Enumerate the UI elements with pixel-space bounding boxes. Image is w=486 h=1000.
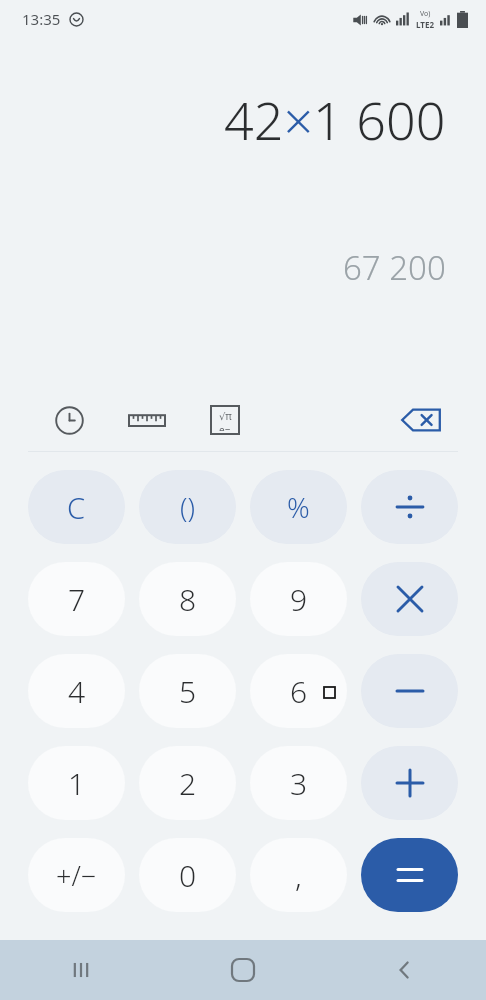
button[interactable]: % — [250, 470, 347, 544]
button[interactable]: Back — [324, 940, 486, 1000]
staticText: LTE2 — [416, 19, 434, 30]
staticText: 7 — [68, 579, 86, 620]
staticText: 9 — [290, 579, 308, 620]
button[interactable]: ÷ — [361, 470, 458, 544]
button[interactable]: 6 — [250, 654, 347, 728]
button[interactable]: 2 — [139, 746, 236, 820]
button[interactable]: + — [361, 746, 458, 820]
button[interactable]: Backspace — [386, 392, 456, 448]
staticText: 13:35 — [22, 9, 61, 29]
staticText: 2 — [179, 763, 197, 804]
button[interactable]: 0 — [139, 838, 236, 912]
button[interactable]: 5 — [139, 654, 236, 728]
button[interactable]: 4 — [28, 654, 125, 728]
staticText: C — [67, 488, 86, 527]
staticText: 3 — [290, 763, 308, 804]
staticText: 8 — [179, 579, 197, 620]
button[interactable]: Home — [162, 940, 324, 1000]
button[interactable]: − — [361, 654, 458, 728]
staticText: 5 — [179, 671, 197, 712]
staticText: +/− — [56, 857, 97, 894]
staticText: 6 — [290, 671, 308, 712]
staticText: √π — [219, 409, 232, 423]
staticText: e= — [219, 423, 231, 431]
button[interactable]: = — [361, 838, 458, 912]
staticText: () — [180, 489, 195, 526]
staticText: , — [295, 855, 302, 896]
button[interactable]: × — [361, 562, 458, 636]
button[interactable]: 1 — [28, 746, 125, 820]
staticText: 4 — [68, 671, 86, 712]
button[interactable]: 9 — [250, 562, 347, 636]
staticText: 42×1 600 — [224, 84, 446, 155]
button[interactable]: +/− — [28, 838, 125, 912]
button[interactable]: () — [139, 470, 236, 544]
button[interactable]: Scientific calculator — [186, 392, 264, 448]
button[interactable]: 3 — [250, 746, 347, 820]
button[interactable]: Unit converter — [108, 392, 186, 448]
button[interactable]: 8 — [139, 562, 236, 636]
staticText: % — [287, 488, 310, 526]
staticText: Vo) — [420, 9, 431, 19]
button[interactable]: , — [250, 838, 347, 912]
button[interactable]: History — [30, 392, 108, 448]
staticText: 67 200 — [343, 245, 446, 290]
staticText: 1 — [68, 763, 86, 804]
button[interactable]: 7 — [28, 562, 125, 636]
staticText: 0 — [179, 855, 197, 896]
button[interactable]: Recent apps — [0, 940, 162, 1000]
button[interactable]: C — [28, 470, 125, 544]
